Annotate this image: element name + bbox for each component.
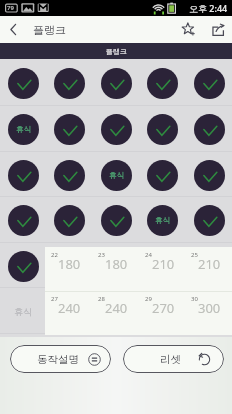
staticText: 180 <box>105 255 128 273</box>
staticText: 휴식 <box>155 216 170 225</box>
button[interactable]: 29 <box>139 291 186 335</box>
button[interactable]: 22 <box>45 247 92 291</box>
button[interactable]: 23 <box>92 247 139 291</box>
button[interactable]: 휴식 <box>93 152 139 198</box>
button[interactable] <box>0 152 46 198</box>
button[interactable] <box>139 334 185 380</box>
button[interactable]: 27 <box>45 291 92 335</box>
button[interactable] <box>139 288 185 334</box>
staticText: 휴식 <box>14 306 32 317</box>
button[interactable] <box>0 197 46 243</box>
staticText: 오후 2:44 <box>189 2 228 14</box>
button[interactable] <box>186 334 232 380</box>
button[interactable]: 휴식 <box>0 106 46 152</box>
button[interactable]: 30 <box>185 291 232 335</box>
button[interactable] <box>0 243 46 289</box>
button[interactable] <box>186 106 232 152</box>
staticText: 28 <box>98 295 105 303</box>
staticText: 30 <box>191 295 198 303</box>
staticText: 리셋 <box>160 353 181 366</box>
staticText: 300 <box>198 299 221 317</box>
button[interactable] <box>0 60 46 106</box>
button[interactable] <box>46 106 92 152</box>
button[interactable]: 24 <box>139 247 186 291</box>
staticText: 79 <box>7 4 14 12</box>
button[interactable] <box>46 152 92 198</box>
staticText: 210 <box>152 255 175 273</box>
staticText: 210 <box>198 255 221 273</box>
button[interactable]: Back <box>0 16 26 43</box>
button[interactable] <box>46 60 92 106</box>
button[interactable] <box>93 197 139 243</box>
button[interactable] <box>186 60 232 106</box>
staticText: 플랭크 <box>106 47 127 56</box>
button[interactable] <box>0 334 46 380</box>
button[interactable]: 25 <box>185 247 232 291</box>
button[interactable]: 휴식 <box>0 288 46 334</box>
button[interactable] <box>93 60 139 106</box>
button[interactable]: 동작설명 <box>10 345 111 373</box>
button[interactable]: Share <box>203 16 232 43</box>
staticText: 270 <box>152 299 175 317</box>
staticText: 플랭크 <box>33 23 66 37</box>
staticText: 27 <box>51 295 58 303</box>
staticText: 휴식 <box>16 125 31 134</box>
button[interactable] <box>186 197 232 243</box>
button[interactable]: Add to favorites <box>174 16 203 43</box>
button[interactable] <box>46 288 92 334</box>
button[interactable] <box>93 334 139 380</box>
button[interactable] <box>46 197 92 243</box>
button[interactable] <box>93 243 139 289</box>
staticText: 240 <box>58 299 81 317</box>
staticText: 23 <box>98 251 105 259</box>
staticText: 25 <box>191 251 198 259</box>
staticText: 240 <box>105 299 128 317</box>
button[interactable]: 휴식 <box>139 197 185 243</box>
staticText: 휴식 <box>109 171 124 180</box>
staticText: 180 <box>58 255 81 273</box>
button[interactable] <box>139 106 185 152</box>
button[interactable] <box>186 288 232 334</box>
button[interactable] <box>46 334 92 380</box>
button[interactable] <box>186 243 232 289</box>
staticText: 29 <box>145 295 152 303</box>
staticText: 24 <box>145 251 152 259</box>
staticText: 22 <box>51 251 58 259</box>
button[interactable] <box>93 288 139 334</box>
button[interactable] <box>139 243 185 289</box>
button[interactable] <box>186 152 232 198</box>
button[interactable]: 리셋 <box>123 345 224 373</box>
button[interactable] <box>139 60 185 106</box>
staticText: 동작설명 <box>37 353 79 366</box>
button[interactable]: 28 <box>92 291 139 335</box>
button[interactable] <box>46 243 92 289</box>
button[interactable] <box>93 106 139 152</box>
button[interactable] <box>139 152 185 198</box>
